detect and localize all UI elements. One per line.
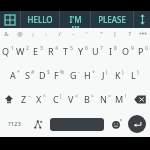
button[interactable]: R	[45, 39, 60, 63]
staticText: P	[138, 45, 144, 57]
button[interactable]: J	[97, 63, 112, 87]
button[interactable]: Z	[18, 87, 33, 111]
staticText: M	[115, 93, 124, 105]
button[interactable]: Enter	[128, 115, 146, 133]
button[interactable]: B	[81, 87, 97, 111]
button[interactable]: -	[66, 28, 80, 39]
staticText: Z	[21, 93, 27, 105]
staticText: A	[10, 69, 16, 81]
button[interactable]: ?	[122, 28, 136, 39]
button[interactable]: I'M	[60, 11, 90, 28]
button[interactable]: Expand suggestions	[134, 11, 150, 28]
staticText: 9	[131, 45, 134, 52]
button[interactable]: U	[90, 39, 105, 63]
button[interactable]: S	[22, 63, 37, 87]
button[interactable]: N	[97, 87, 113, 111]
button[interactable]: Keyboard modes	[0, 11, 20, 28]
button[interactable]: '	[80, 28, 94, 39]
staticText: J	[102, 69, 105, 81]
button[interactable]: I	[105, 39, 120, 63]
staticText: E	[33, 45, 39, 57]
button[interactable]: W	[15, 39, 30, 63]
staticText: 0	[145, 45, 148, 52]
staticText: ~	[28, 93, 31, 100]
staticText: H	[84, 69, 91, 81]
staticText: !	[125, 93, 127, 100]
button[interactable]: X	[33, 87, 49, 111]
button[interactable]: Space	[50, 118, 104, 131]
button[interactable]: HELLO	[21, 11, 59, 28]
button[interactable]: &	[0, 28, 13, 39]
staticText: }	[137, 69, 139, 76]
staticText: ?	[128, 30, 131, 38]
staticText: 2	[26, 45, 29, 52]
staticText: Q	[2, 45, 10, 57]
button[interactable]: :	[39, 28, 52, 39]
button[interactable]: Languages	[28, 111, 48, 137]
button[interactable]: M	[113, 87, 129, 111]
staticText: |	[113, 30, 117, 38]
button[interactable]: A	[7, 63, 22, 87]
button[interactable]: "	[94, 28, 108, 39]
staticText: T	[63, 45, 69, 57]
staticText: 1	[11, 45, 14, 52]
button[interactable]: |	[108, 28, 122, 39]
button[interactable]: @	[13, 28, 26, 39]
button[interactable]: F	[52, 63, 67, 87]
staticText: <	[75, 93, 78, 100]
staticText: 7	[100, 45, 103, 52]
staticText: I	[109, 45, 113, 57]
staticText: O	[122, 45, 130, 57]
button[interactable]: L	[127, 63, 142, 87]
staticText: F	[54, 69, 59, 81]
staticText: -	[78, 69, 80, 76]
button[interactable]: /	[52, 28, 66, 39]
staticText: >	[91, 93, 94, 100]
staticText: "	[100, 30, 103, 38]
button[interactable]: PLEASE	[91, 11, 133, 28]
staticText: PLEASE	[98, 14, 126, 25]
button[interactable]: Q	[0, 39, 15, 63]
button[interactable]: Backspace	[129, 87, 150, 111]
staticText: V	[68, 93, 74, 105]
button[interactable]: More symbols	[136, 28, 150, 39]
staticText: @	[17, 30, 23, 38]
staticText: W	[16, 45, 25, 57]
button[interactable]: Emoji	[106, 111, 128, 137]
staticText: G	[70, 69, 77, 81]
staticText: ;	[32, 30, 34, 38]
staticText: K	[115, 69, 121, 81]
button[interactable]: D	[37, 63, 52, 87]
button[interactable]: C	[49, 87, 65, 111]
staticText: /	[58, 30, 61, 38]
button[interactable]: G	[67, 63, 82, 87]
staticText: [	[60, 93, 62, 100]
button[interactable]: T	[60, 39, 75, 63]
staticText: U	[92, 45, 99, 57]
staticText: R	[48, 45, 54, 57]
button[interactable]: O	[120, 39, 135, 63]
staticText: N	[100, 93, 107, 105]
staticText: $	[47, 69, 50, 76]
button[interactable]: K	[112, 63, 127, 87]
staticText: 8	[114, 45, 117, 52]
button[interactable]: Shift	[0, 87, 18, 111]
button[interactable]: ?123	[0, 111, 28, 137]
staticText: +	[92, 69, 95, 76]
button[interactable]: E	[30, 39, 45, 63]
staticText: #	[31, 69, 35, 76]
staticText: ^	[43, 93, 46, 100]
staticText: L	[131, 69, 136, 81]
button[interactable]: H	[82, 63, 97, 87]
button[interactable]: Y	[75, 39, 90, 63]
button[interactable]: ;	[26, 28, 39, 39]
button[interactable]: V	[65, 87, 81, 111]
staticText: 3	[40, 45, 43, 52]
staticText: B	[84, 93, 90, 105]
button[interactable]: P	[135, 39, 150, 63]
staticText: ?123	[8, 120, 21, 128]
staticText: -	[72, 30, 74, 38]
staticText: 5	[70, 45, 73, 52]
staticText: 4	[55, 45, 58, 52]
staticText: X	[36, 93, 42, 105]
